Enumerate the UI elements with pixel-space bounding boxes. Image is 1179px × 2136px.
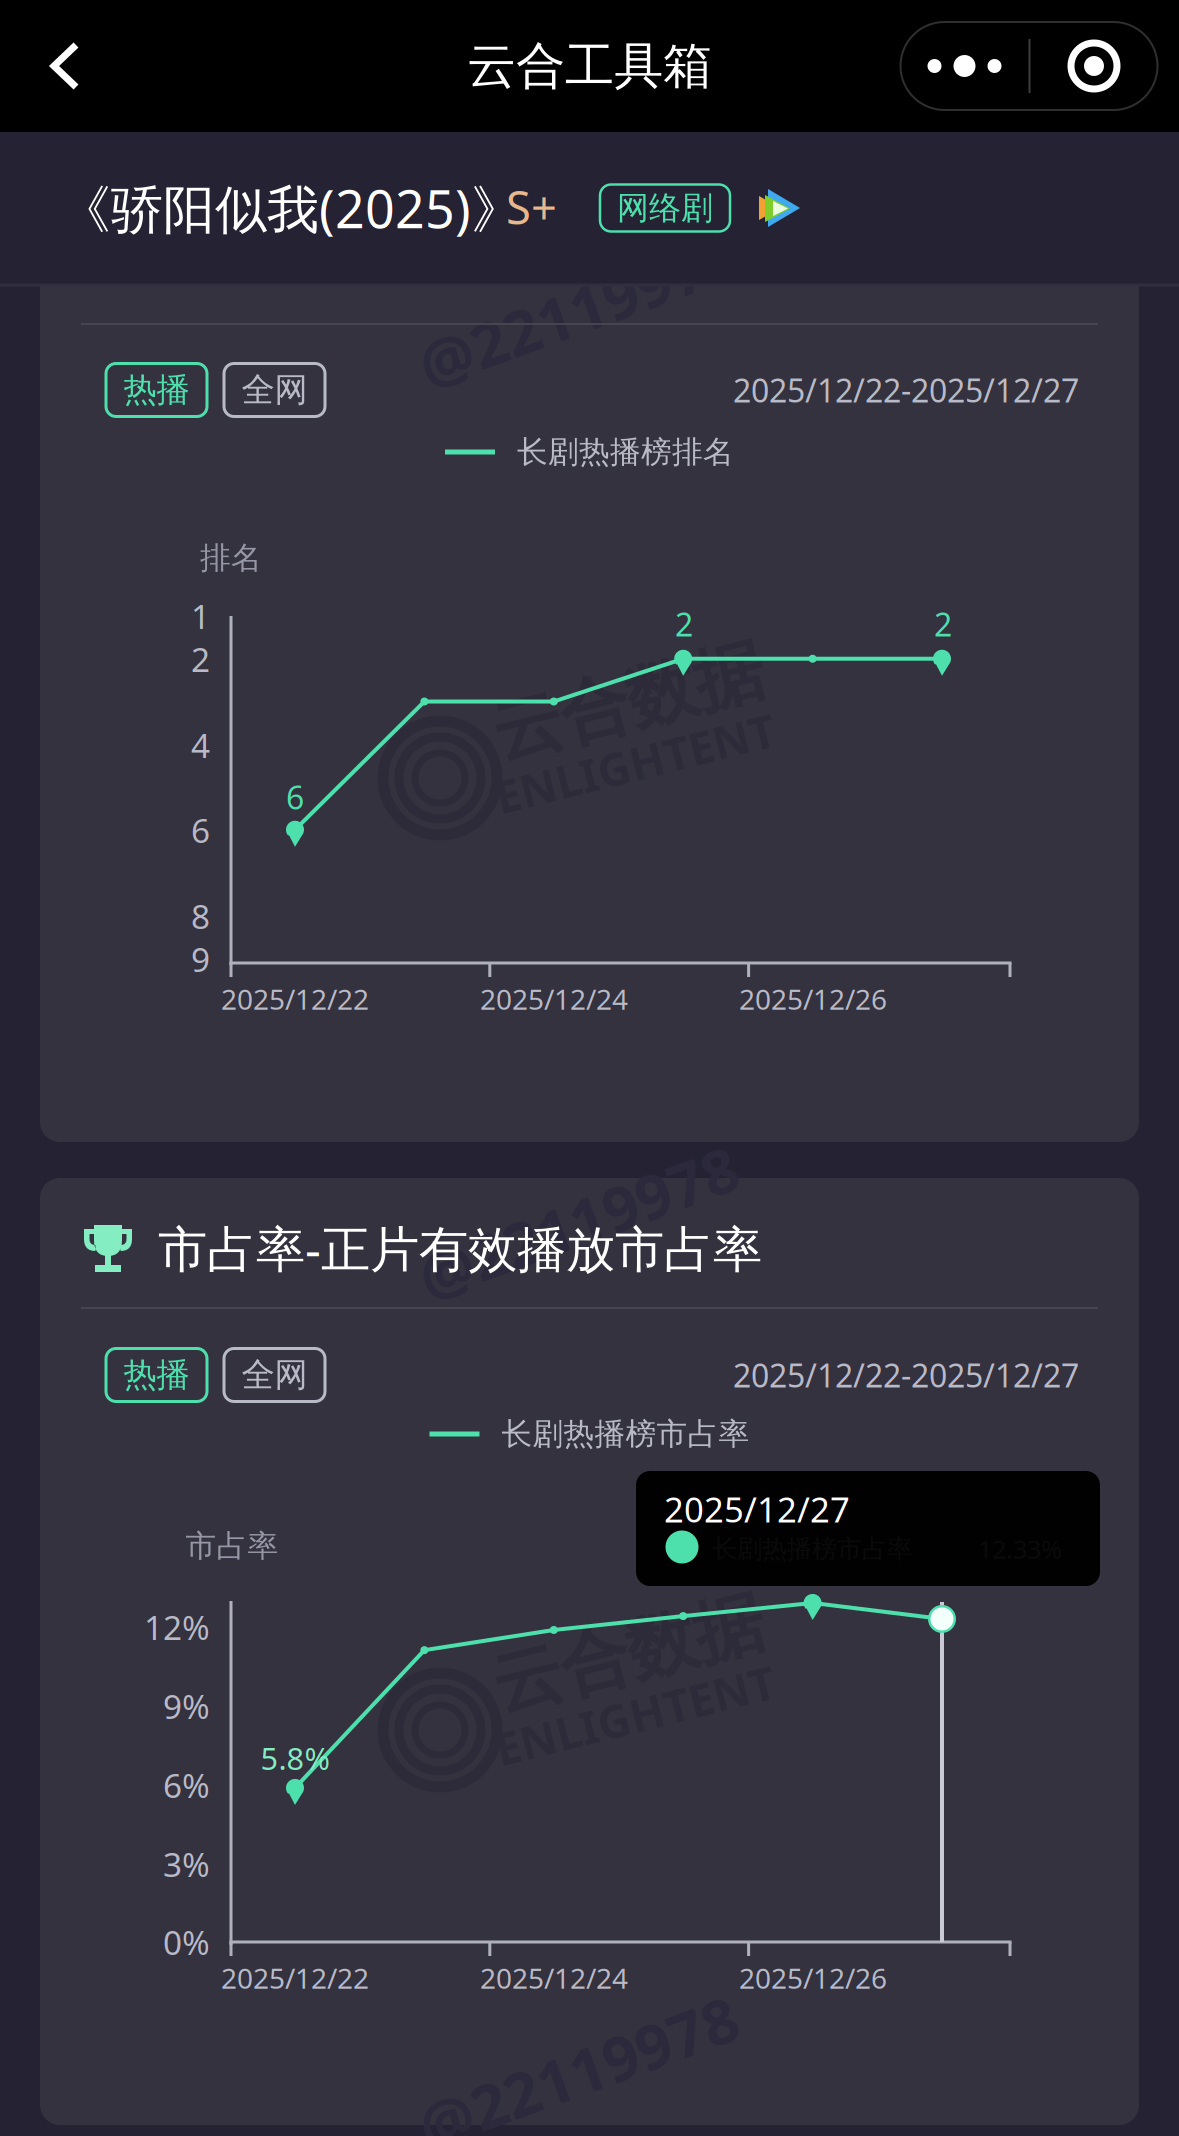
staticText: 市占率-正片有效播放市占率 [158, 1215, 762, 1281]
staticText: 5.8% [260, 1738, 329, 1778]
staticText: 热播 [123, 1354, 189, 1395]
staticText: 2025/12/24 [480, 980, 628, 1018]
staticText: 2025/12/22-2025/12/27 [733, 1354, 1079, 1396]
staticText: 1 [191, 594, 210, 638]
staticText: 2025/12/26 [739, 980, 887, 1018]
staticText: 全网 [241, 1354, 307, 1395]
button[interactable]: 热播 [106, 363, 207, 416]
button[interactable]: Back [11, 8, 121, 124]
staticText: 长剧热播榜市占率 [712, 1533, 912, 1564]
staticText: 12% [144, 1605, 210, 1649]
button[interactable]: 全网 [224, 363, 325, 416]
staticText: 9% [163, 1684, 210, 1728]
staticText: 2025/12/24 [480, 1959, 628, 1997]
staticText: 2025/12/26 [739, 1959, 887, 1997]
staticText: 2 [675, 603, 693, 645]
staticText: 2025/12/22 [221, 1959, 369, 1997]
staticText: 2025/12/22-2025/12/27 [733, 369, 1079, 411]
staticText: 2 [934, 603, 952, 645]
staticText: 4 [191, 723, 210, 767]
staticText: @22119978 [410, 269, 745, 351]
button[interactable]: 热播 [106, 1348, 207, 1401]
staticText: 9 [191, 937, 210, 981]
staticText: 6% [163, 1763, 210, 1807]
staticText: 云合数据 [490, 659, 766, 745]
staticText: 3% [163, 1842, 210, 1886]
staticText: 2025/12/22 [221, 980, 369, 1018]
staticText: 云合工具箱 [467, 36, 712, 96]
staticText: 全网 [241, 369, 307, 410]
staticText: S+ [506, 177, 557, 237]
staticText: 6 [286, 776, 304, 818]
button[interactable]: 全网 [224, 1348, 325, 1401]
staticText: 市占率 [185, 1527, 278, 1565]
staticText: 云合数据 [490, 1611, 766, 1697]
staticText: 0% [163, 1920, 210, 1964]
staticText: 2 [191, 637, 210, 681]
staticText: 长剧热播榜市占率 [501, 1415, 749, 1453]
staticText: @22119978 [410, 1181, 745, 1263]
staticText: @22119978 [410, 2031, 745, 2113]
staticText: 6 [191, 808, 210, 852]
staticText: ENLIGHTENT [491, 1685, 778, 1745]
staticText: ENLIGHTENT [491, 733, 778, 793]
staticText: 网络剧 [617, 188, 713, 228]
staticText: 《骄阳似我(2025)》 [59, 173, 523, 243]
staticText: 长剧热播榜排名 [517, 433, 734, 471]
button[interactable]: More options [900, 22, 1157, 110]
staticText: 热播 [123, 369, 189, 410]
staticText: 2025/12/27 [664, 1486, 850, 1532]
staticText: 排名 [200, 539, 262, 577]
staticText: 8 [191, 894, 210, 938]
